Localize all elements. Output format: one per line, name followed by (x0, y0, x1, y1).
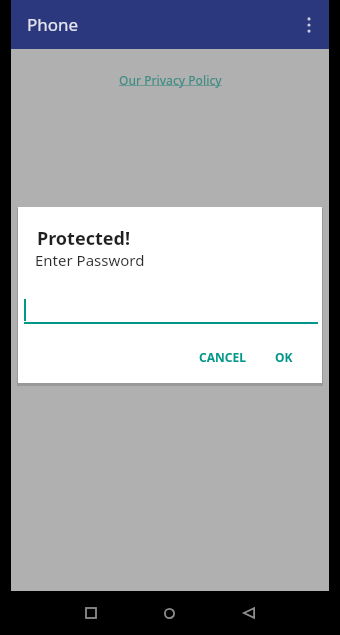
button[interactable]: Back (227, 591, 271, 635)
staticText: Protected! (37, 226, 130, 251)
button[interactable]: Recents (69, 591, 113, 635)
button[interactable]: Our Privacy Policy (111, 69, 230, 91)
staticText: OK (275, 349, 293, 365)
button[interactable]: CANCEL (189, 343, 256, 371)
button[interactable]: Home (147, 591, 191, 635)
staticText: CANCEL (199, 349, 246, 365)
staticText: Our Privacy Policy (119, 72, 222, 88)
button[interactable]: OK (265, 343, 303, 371)
button[interactable]: More options (289, 5, 329, 45)
staticText: Phone (27, 13, 79, 36)
staticText: Enter Password (35, 250, 145, 270)
